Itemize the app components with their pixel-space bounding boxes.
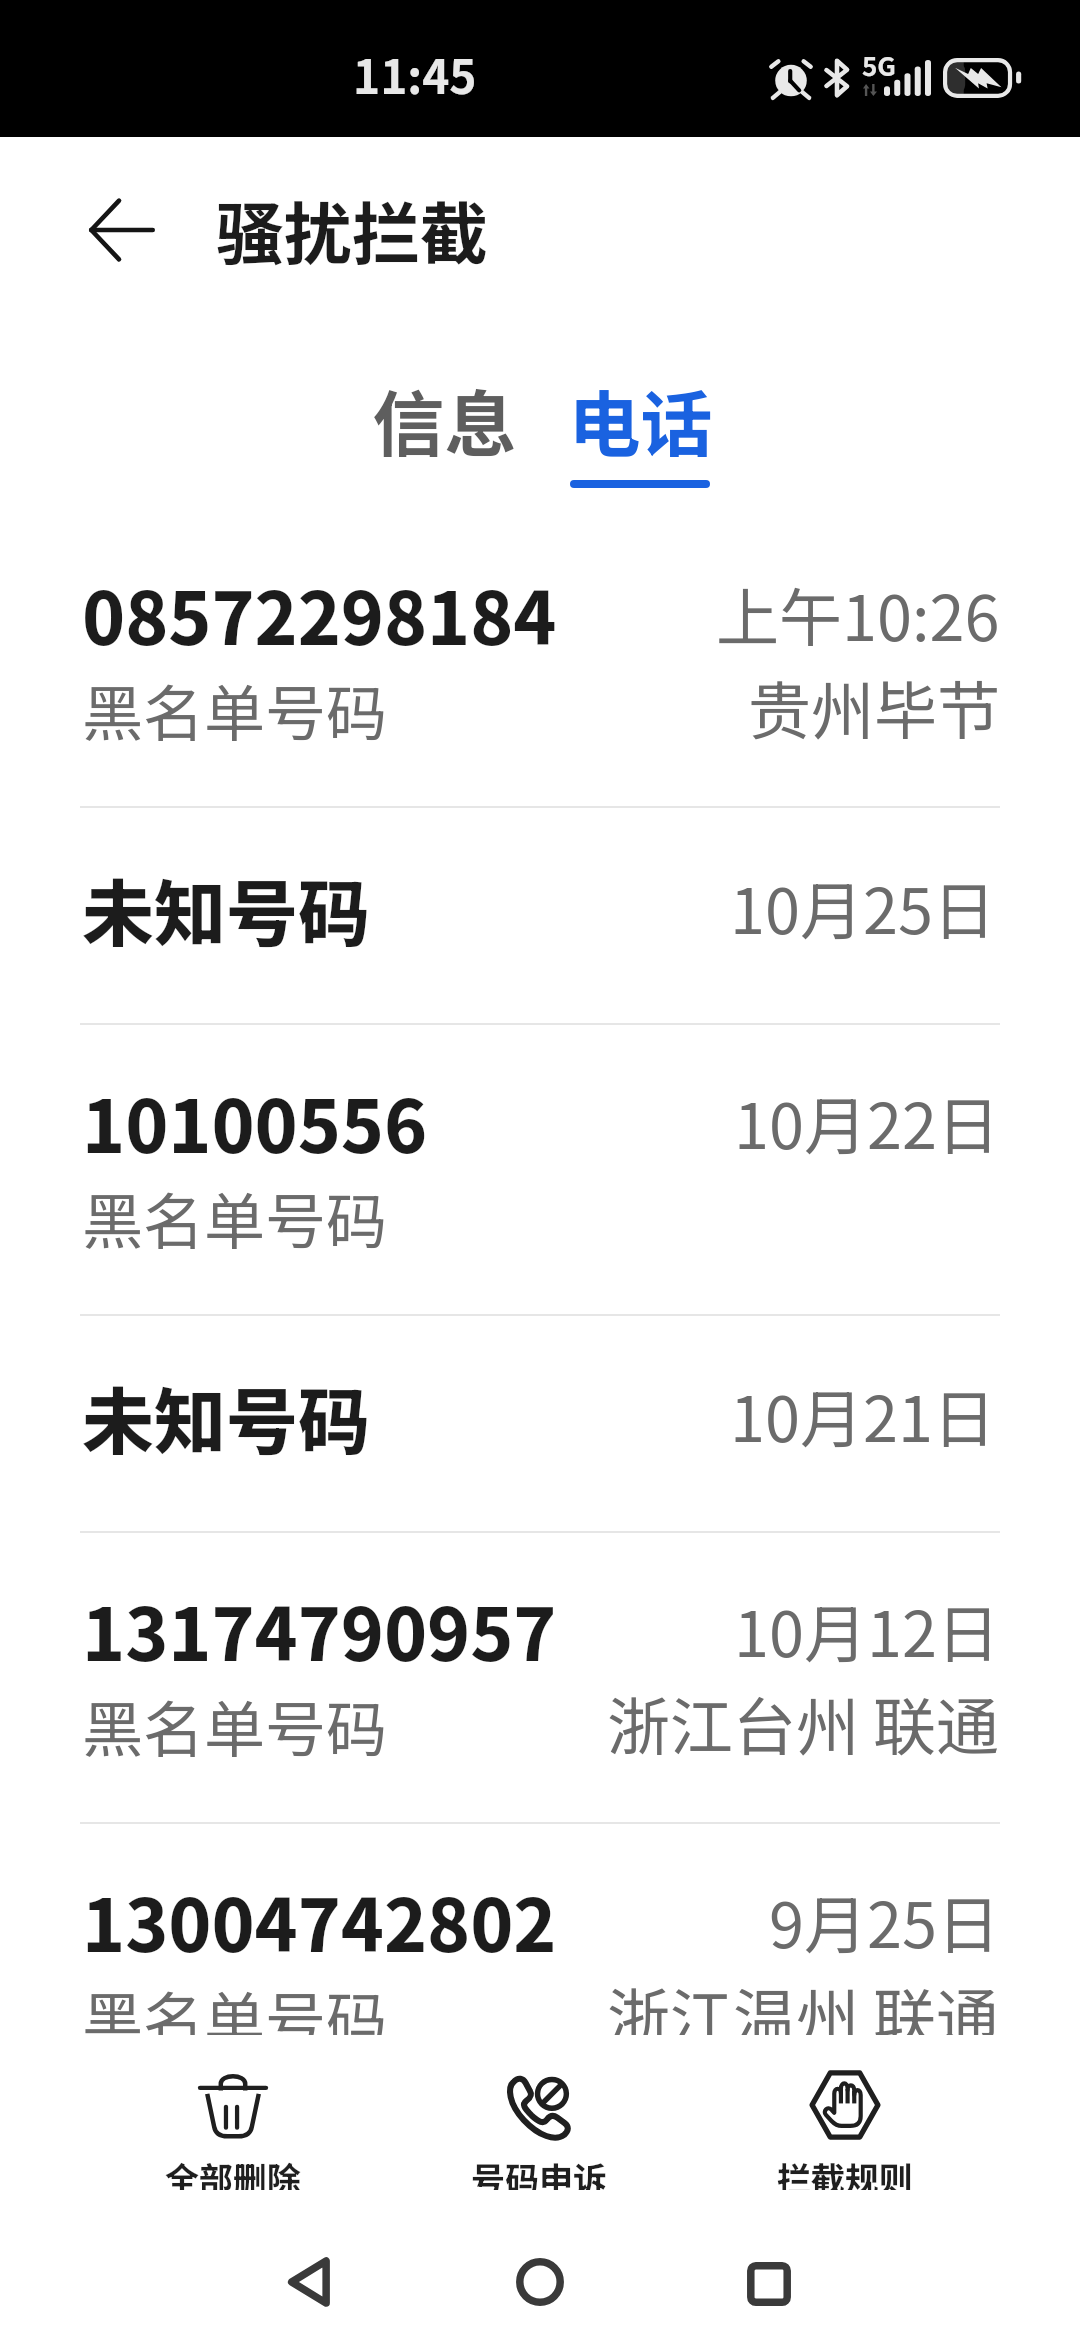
staticText: 浙江温州 联通 bbox=[607, 1968, 1000, 2059]
button[interactable]: Back bbox=[74, 182, 170, 278]
button[interactable]: Home bbox=[470, 2228, 610, 2336]
button[interactable]: 电话 bbox=[526, 332, 754, 472]
staticText: 11:45 bbox=[353, 41, 477, 108]
staticText: 未知号码 bbox=[82, 856, 371, 960]
staticText: 黑名单号码 bbox=[82, 665, 388, 753]
staticText: 骚扰拦截 bbox=[216, 180, 489, 278]
staticText: 10100556 bbox=[82, 1069, 428, 1173]
staticText: 黑名单号码 bbox=[82, 1972, 388, 2060]
staticText: 5G bbox=[862, 46, 896, 84]
staticText: 10月25日 bbox=[730, 861, 996, 952]
button[interactable]: 10100556 bbox=[0, 1025, 1080, 1314]
staticText: 10月12日 bbox=[734, 1584, 1000, 1675]
button[interactable]: 13174790957 bbox=[0, 1533, 1080, 1822]
staticText: 拦截规则 bbox=[777, 2153, 913, 2202]
button[interactable]: 13004742802 bbox=[0, 1824, 1080, 2113]
staticText: 10月21日 bbox=[730, 1369, 996, 1460]
button[interactable]: 拦截规则 bbox=[720, 2035, 970, 2190]
staticText: 13004742802 bbox=[82, 1868, 557, 1972]
staticText: 电话 bbox=[568, 367, 713, 471]
button[interactable]: 未知号码 bbox=[0, 808, 1080, 1023]
staticText: 未知号码 bbox=[82, 1364, 371, 1468]
staticText: 08572298184 bbox=[82, 561, 557, 665]
button[interactable]: 08572298184 bbox=[0, 517, 1080, 806]
staticText: 黑名单号码 bbox=[82, 1681, 388, 1769]
button[interactable]: 未知号码 bbox=[0, 1316, 1080, 1531]
button[interactable]: Recents bbox=[699, 2230, 839, 2338]
staticText: 黑名单号码 bbox=[82, 1173, 388, 1261]
staticText: 10月22日 bbox=[734, 1076, 1000, 1167]
staticText: 9月25日 bbox=[769, 1875, 1000, 1966]
staticText: 信息 bbox=[372, 367, 517, 471]
button[interactable]: 号码申诉 bbox=[414, 2035, 664, 2190]
staticText: 上午10:26 bbox=[716, 568, 1000, 659]
staticText: 贵州毕节 bbox=[748, 661, 1000, 752]
staticText: 浙江台州 联通 bbox=[607, 1677, 1000, 1768]
button[interactable]: 信息 bbox=[330, 332, 558, 472]
staticText: 13174790957 bbox=[82, 1577, 557, 1681]
button[interactable]: 全部删除 bbox=[108, 2035, 358, 2190]
button[interactable]: Back bbox=[238, 2228, 378, 2336]
staticText: 号码申诉 bbox=[471, 2153, 607, 2202]
staticText: 全部删除 bbox=[165, 2153, 301, 2202]
